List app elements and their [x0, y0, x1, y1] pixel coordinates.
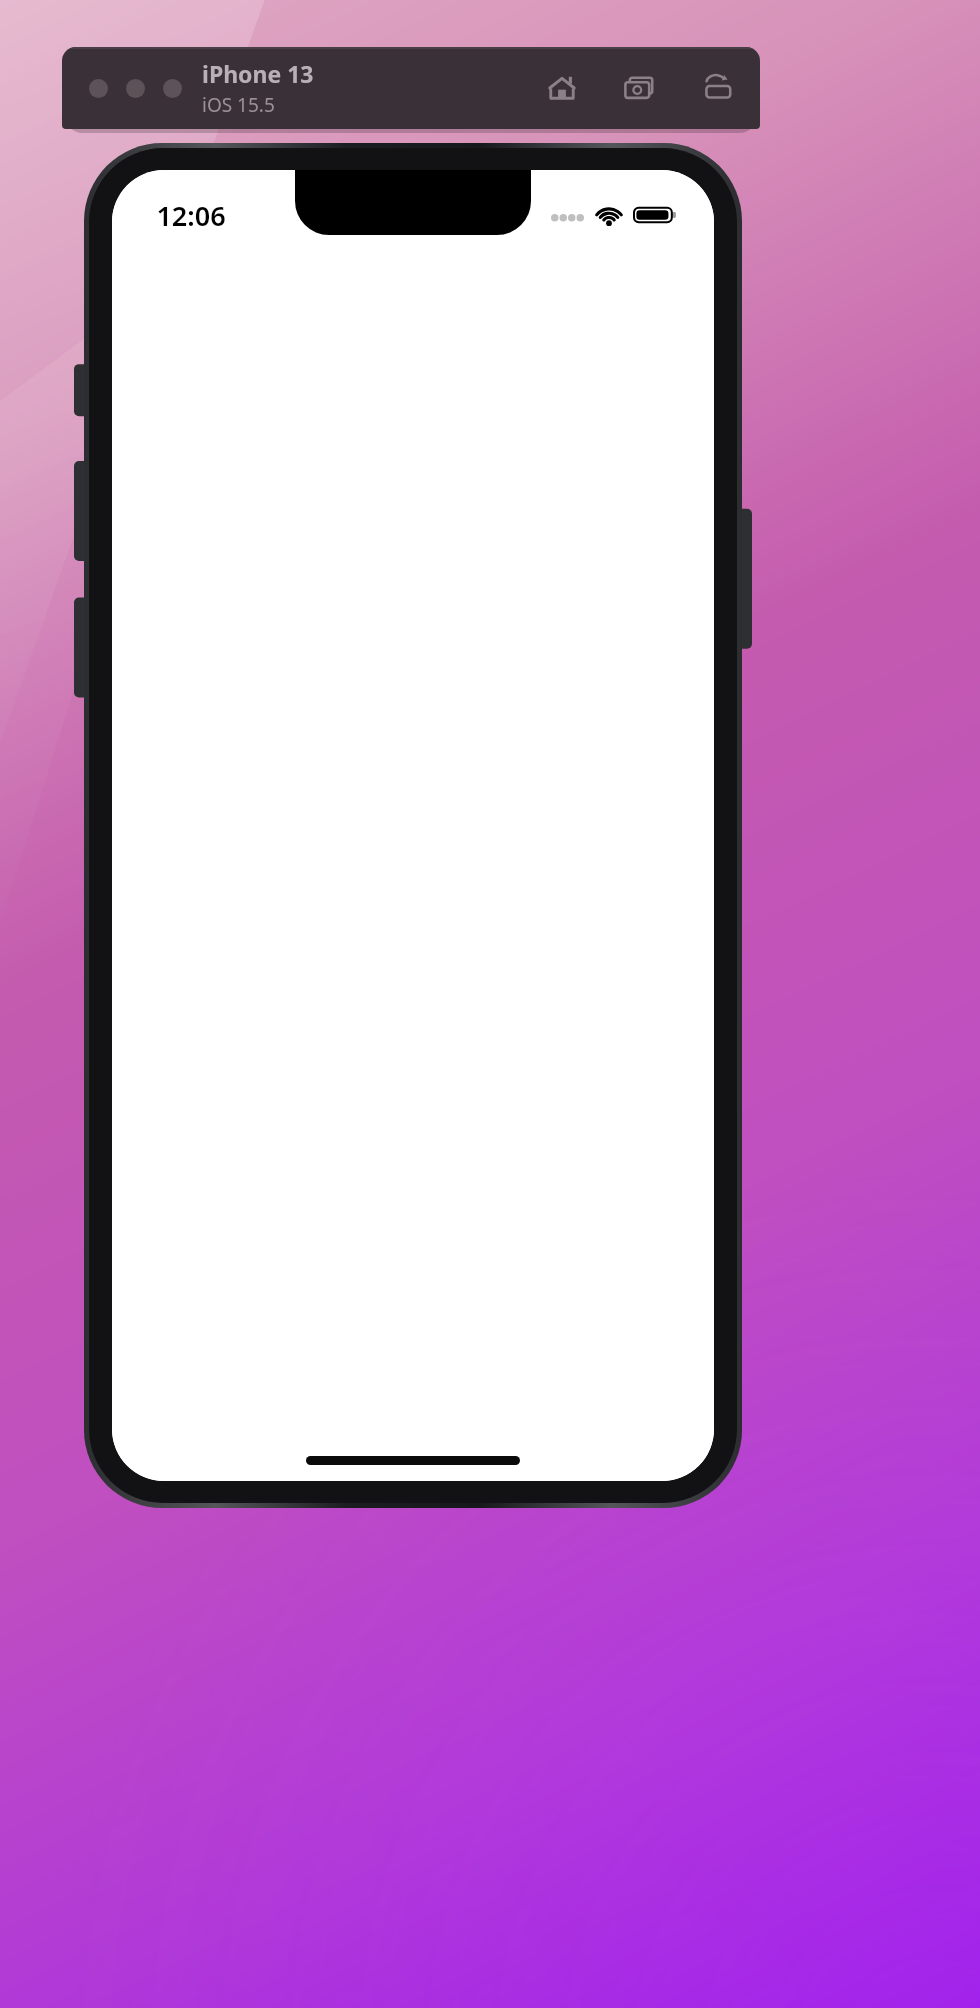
staticText: iOS 15.5	[202, 92, 275, 118]
button[interactable]: Minimize window	[126, 79, 145, 98]
button[interactable]: Close window	[89, 79, 108, 98]
button[interactable]: Screenshot	[620, 68, 660, 108]
button[interactable]: Maximize window	[163, 79, 182, 98]
button[interactable]: Home	[542, 68, 582, 108]
staticText: iPhone 13	[202, 58, 314, 89]
button[interactable]: Rotate device	[698, 68, 738, 108]
staticText: 12:06	[156, 197, 226, 234]
